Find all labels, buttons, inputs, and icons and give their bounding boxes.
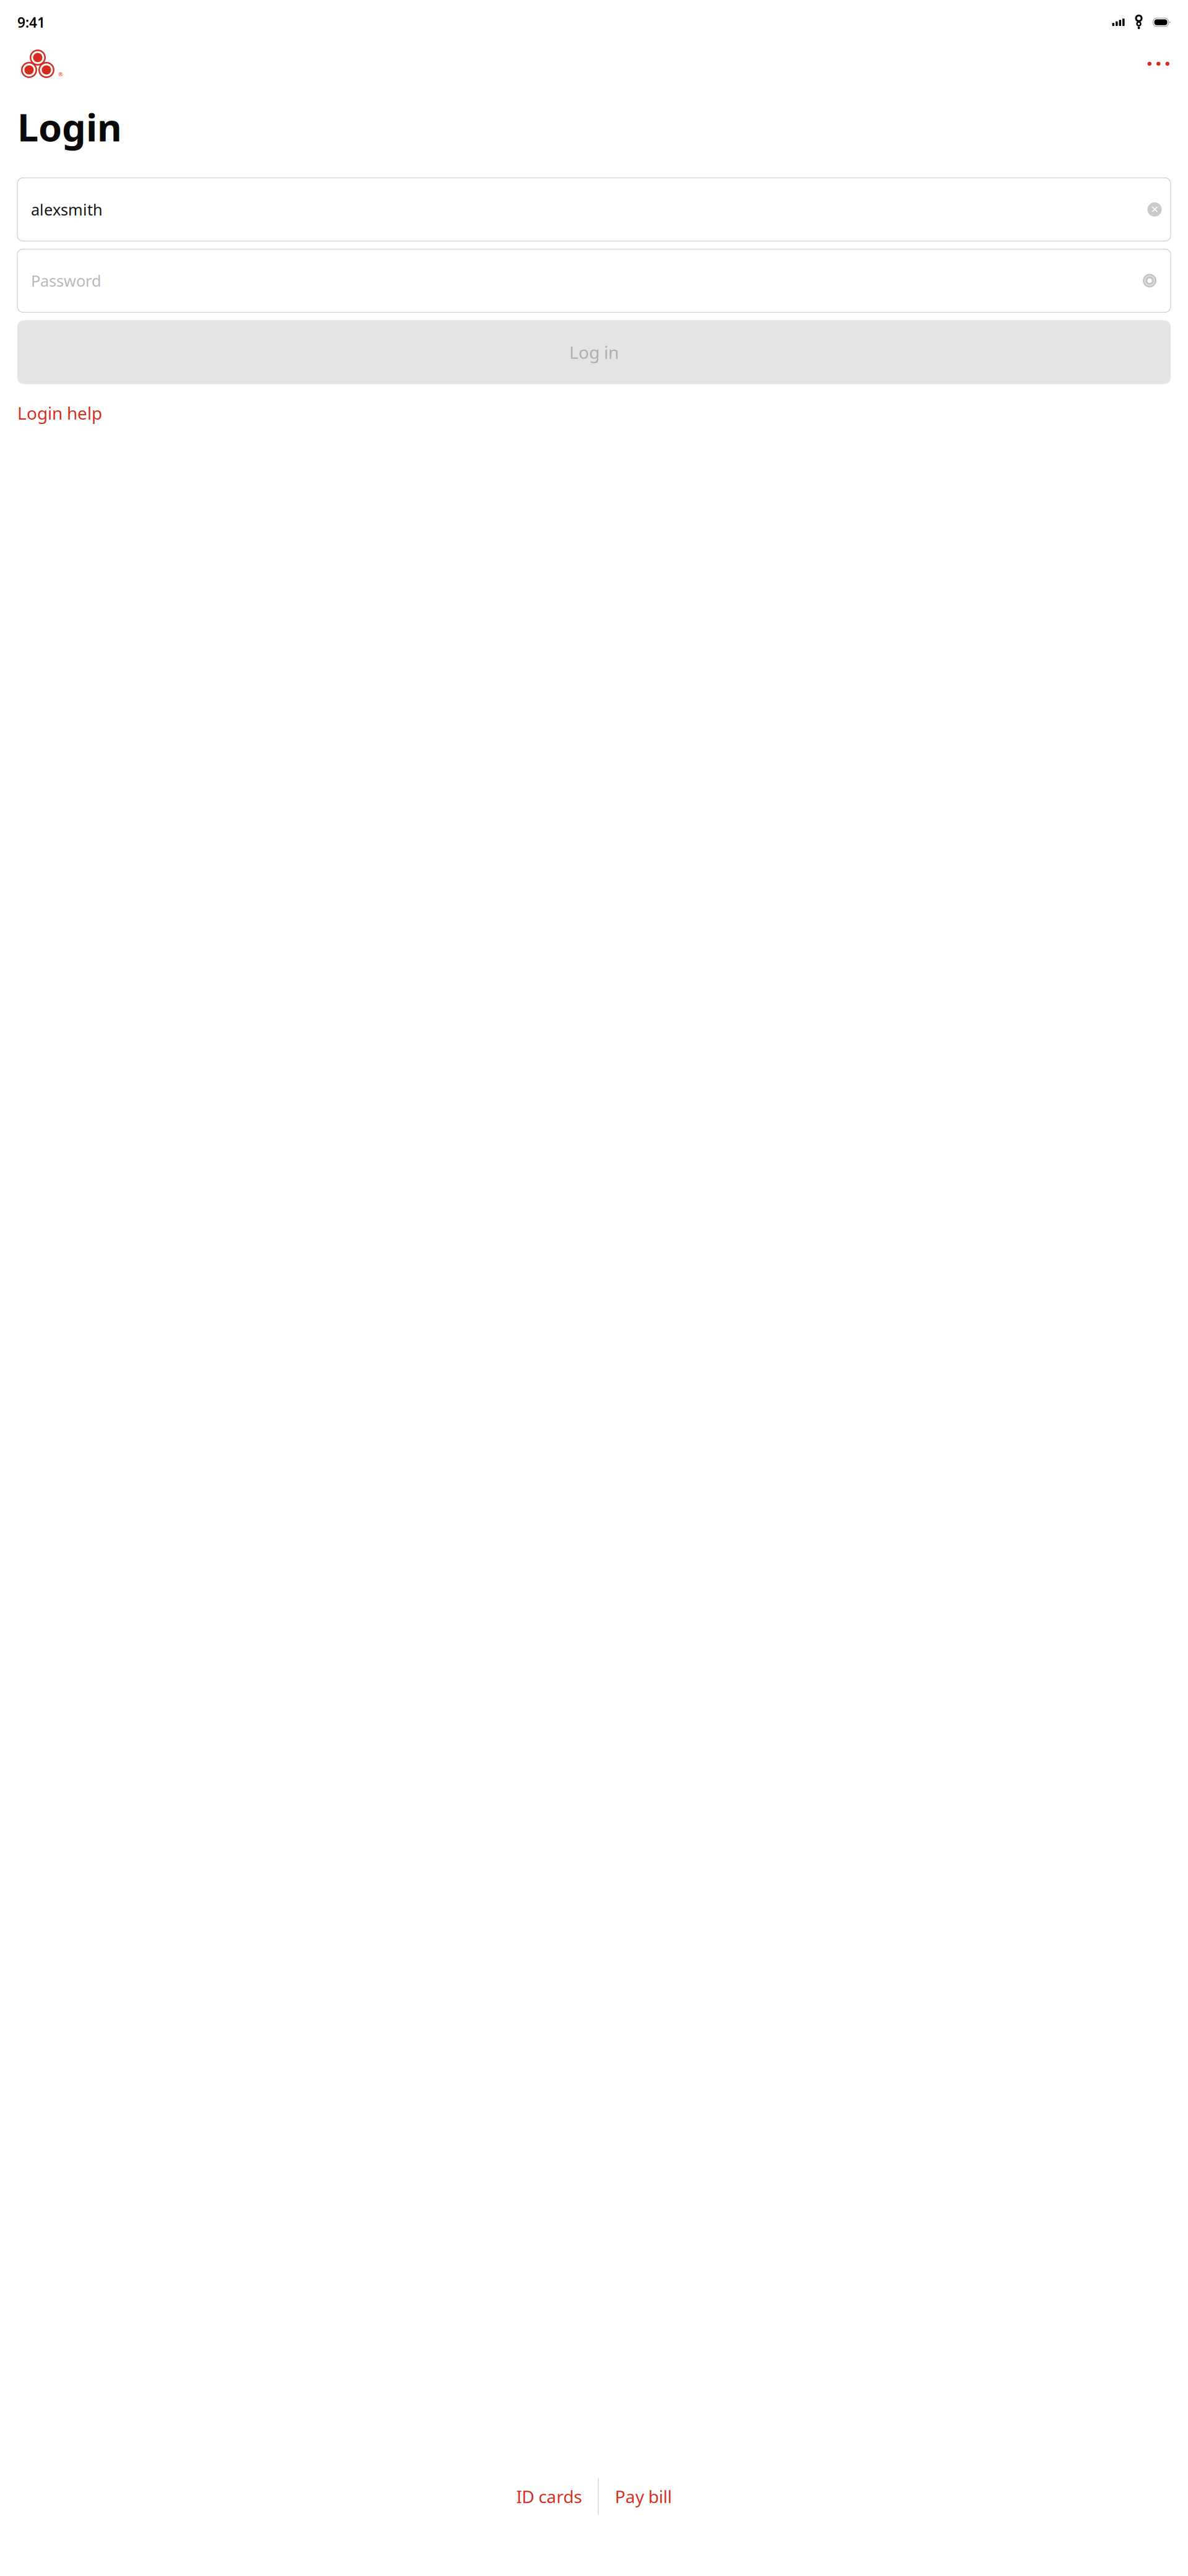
button[interactable]: Clear text — [1143, 198, 1166, 221]
staticText: Log in — [569, 341, 619, 364]
button[interactable]: Show password — [1135, 268, 1164, 294]
staticText: 9:41 — [17, 13, 45, 32]
staticText: Login — [17, 102, 122, 152]
button[interactable]: More options — [1141, 53, 1176, 74]
staticText: ® — [58, 70, 63, 78]
staticText: Pay bill — [615, 2485, 672, 2508]
staticText: ID cards — [516, 2485, 582, 2508]
staticText: alexsmith — [31, 199, 103, 220]
staticText: ✕ — [1151, 204, 1159, 215]
staticText: Password — [31, 270, 101, 291]
button[interactable]: Pay bill — [599, 2477, 688, 2515]
button[interactable]: State Farm home — [12, 50, 63, 78]
button[interactable]: ID cards — [500, 2477, 598, 2515]
button[interactable]: Login help — [17, 398, 102, 428]
staticText: Login help — [17, 401, 102, 424]
